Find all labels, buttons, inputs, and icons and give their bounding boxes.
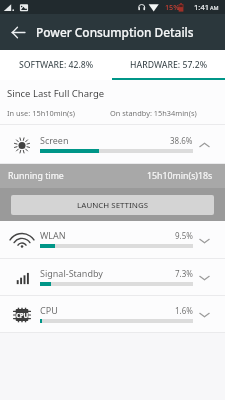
- button[interactable]: SOFTWARE: 42.8%: [0, 50, 112, 80]
- staticText: SOFTWARE: 42.8%: [19, 59, 94, 71]
- staticText: Screen: [40, 134, 170, 146]
- button[interactable]: LAUNCH SETTINGS: [11, 195, 214, 215]
- staticText: CPU: [16, 311, 28, 319]
- staticText: Running time: [8, 170, 64, 182]
- staticText: Signal-Standby: [40, 267, 175, 279]
- staticText: 7.3%: [175, 268, 193, 279]
- staticText: 38.6%: [170, 135, 193, 146]
- staticText: On standby: 15h34min(s): [110, 108, 197, 118]
- button[interactable]: HARDWARE: 57.2%: [112, 50, 225, 80]
- staticText: 9.5%: [175, 230, 193, 241]
- staticText: Power Consumption Details: [36, 24, 194, 40]
- staticText: CPU: [40, 304, 175, 316]
- staticText: WLAN: [40, 229, 175, 241]
- button[interactable]: CPU: [0, 296, 225, 333]
- staticText: Since Last Full Charge: [7, 87, 105, 100]
- staticText: LAUNCH SETTINGS: [77, 200, 149, 211]
- staticText: 15h10min(s)18s: [147, 170, 213, 182]
- button[interactable]: Signal-Standby: [0, 259, 225, 296]
- staticText: AM: [210, 4, 219, 12]
- staticText: 1.6%: [175, 305, 193, 316]
- button[interactable]: Back: [0, 14, 36, 50]
- staticText: In use: 15h10min(s): [7, 108, 110, 118]
- staticText: 1:41: [194, 2, 210, 12]
- button[interactable]: Screen: [0, 125, 225, 164]
- button[interactable]: WLAN: [0, 221, 225, 259]
- staticText: 15%: [165, 2, 180, 12]
- staticText: HARDWARE: 57.2%: [130, 59, 208, 71]
